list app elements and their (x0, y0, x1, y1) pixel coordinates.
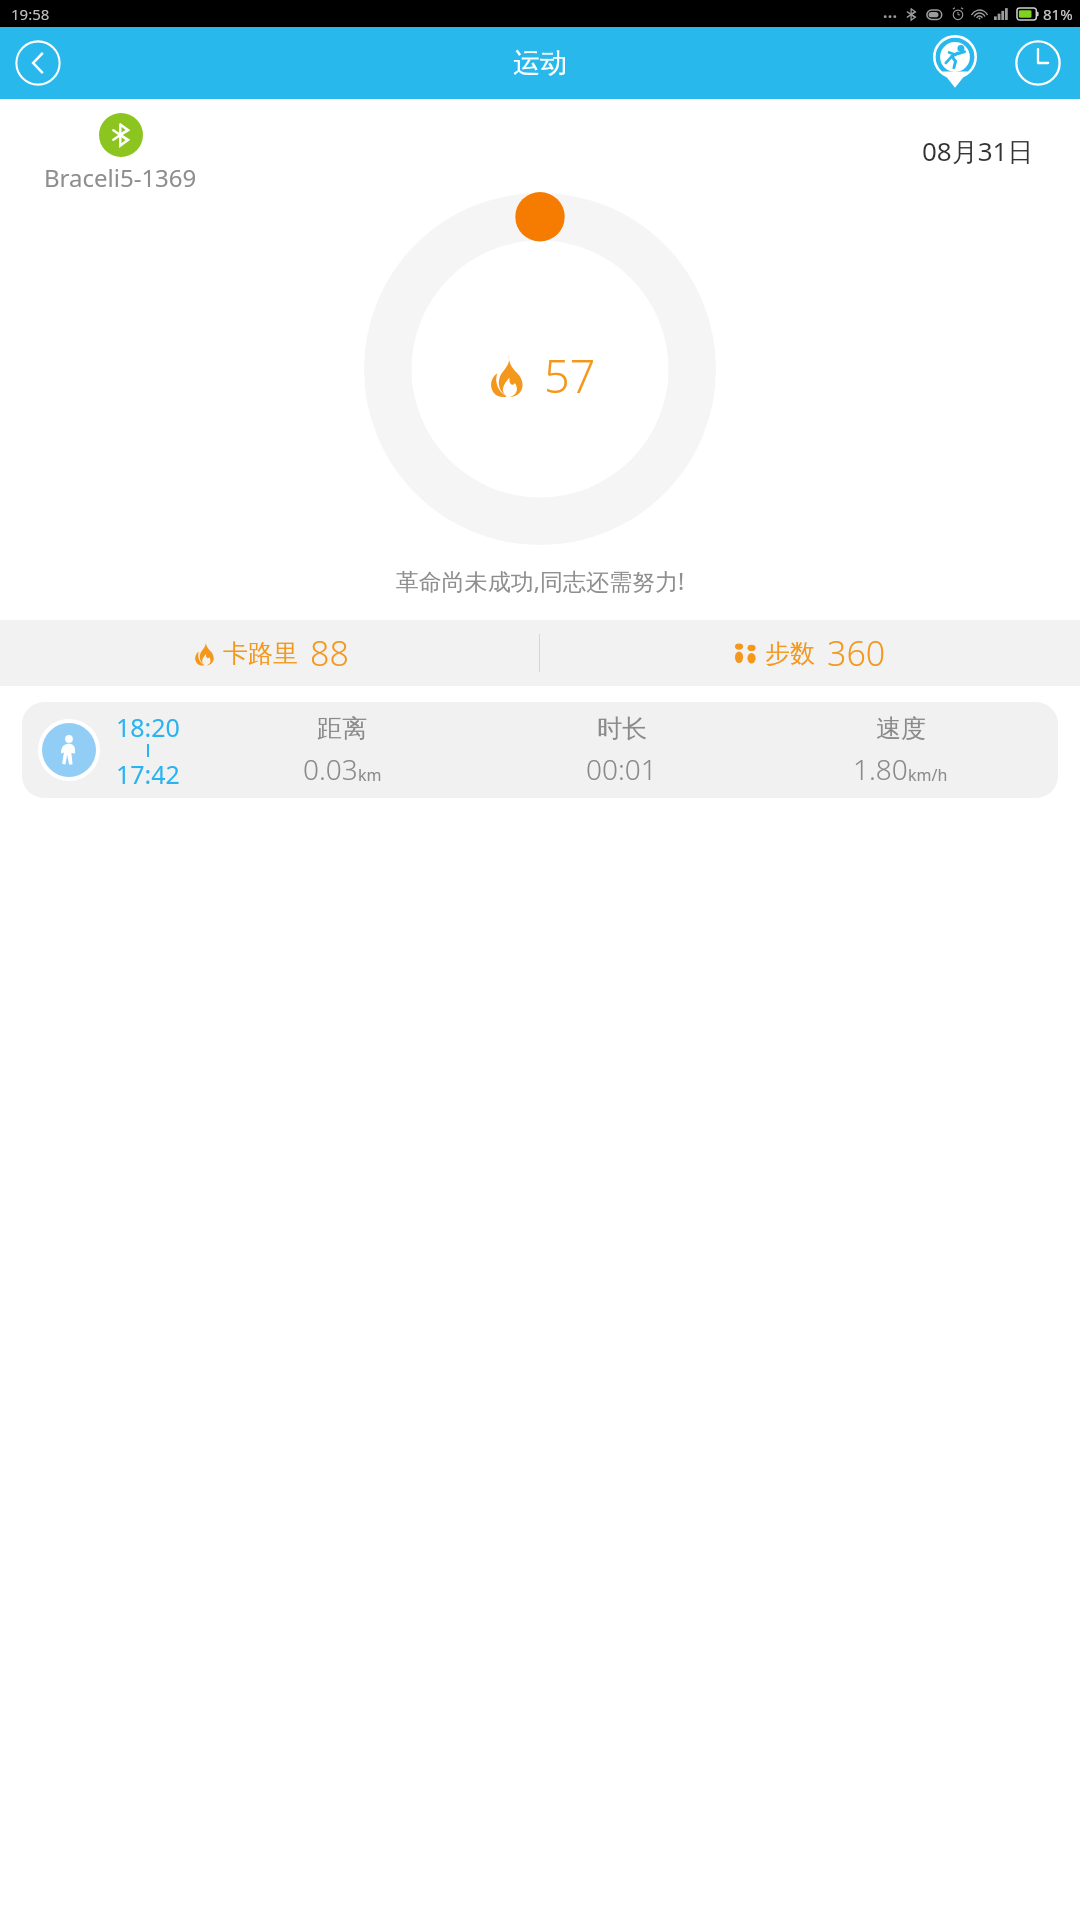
staticText: 卡路里 (223, 638, 298, 669)
staticText: 57 (544, 345, 596, 406)
staticText: 81% (1043, 4, 1073, 24)
staticText: Braceli5-1369 (44, 161, 197, 193)
staticText: 18:20 (116, 710, 180, 744)
staticText: 时长 (597, 713, 647, 744)
staticText: 运动 (513, 46, 567, 80)
staticText: 19:58 (11, 4, 50, 24)
staticText: 革命尚未成功,同志还需努力! (0, 565, 1080, 596)
button[interactable]: Back (12, 37, 64, 89)
button[interactable]: 卡路里 (0, 620, 539, 686)
staticText: 17:42 (116, 757, 180, 791)
button[interactable]: History (1010, 35, 1066, 91)
staticText: 08月31日 (922, 133, 1034, 169)
staticText: 步数 (765, 638, 815, 669)
staticText: 距离 (317, 713, 367, 744)
button[interactable]: 步数 (540, 620, 1080, 686)
staticText: 0.03 (303, 750, 358, 788)
staticText: 360 (827, 630, 886, 676)
staticText: 1.80 (853, 750, 908, 788)
staticText: km/h (908, 764, 948, 786)
staticText: km (358, 764, 382, 786)
staticText: 速度 (876, 713, 926, 744)
button[interactable]: Start run (926, 34, 984, 92)
button[interactable]: 18:20 (22, 702, 1058, 798)
staticText: 88 (310, 630, 349, 676)
staticText: 00:01 (586, 750, 657, 788)
